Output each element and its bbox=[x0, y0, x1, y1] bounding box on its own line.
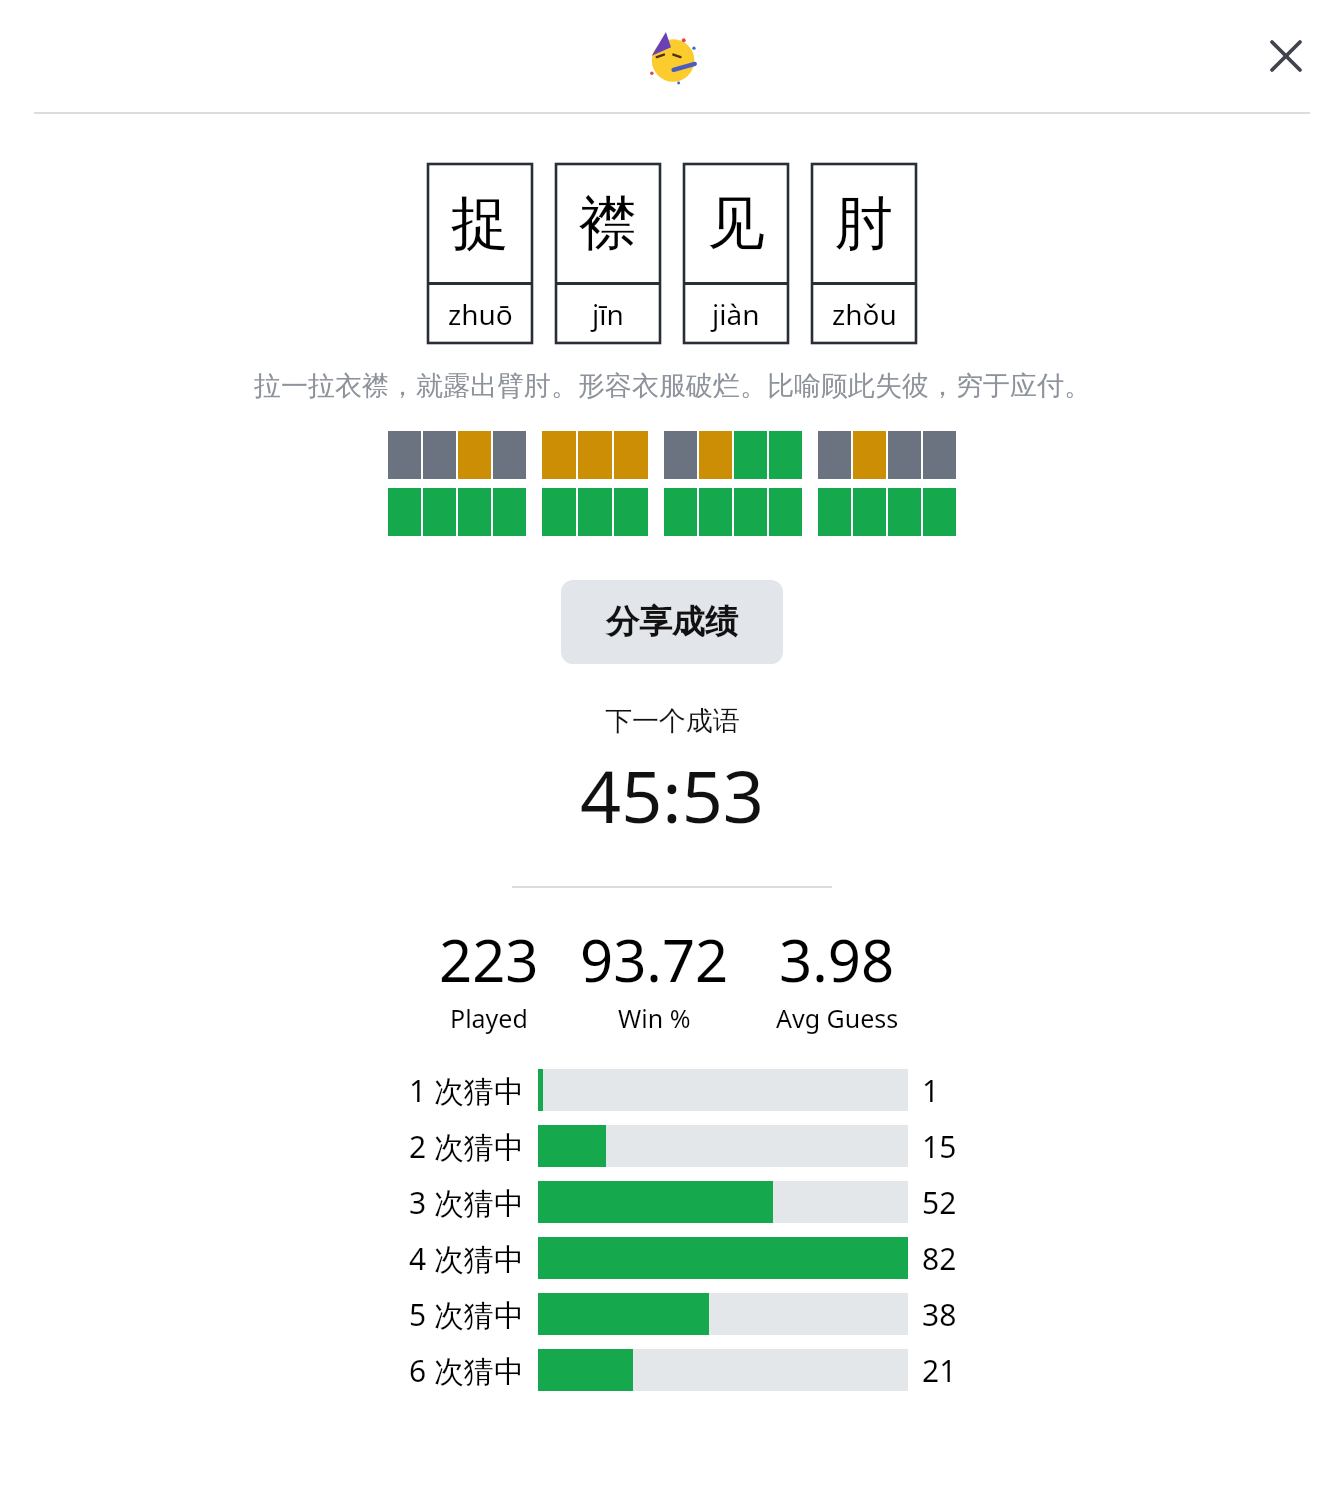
staticText: jiàn bbox=[712, 295, 760, 333]
staticText: 分享成绩 bbox=[606, 601, 738, 643]
button[interactable]: 襟 bbox=[556, 164, 660, 343]
button[interactable]: Close bbox=[1254, 24, 1318, 88]
staticText: 45:53 bbox=[580, 746, 765, 844]
staticText: Win % bbox=[618, 1001, 691, 1035]
staticText: jīn bbox=[592, 295, 624, 333]
staticText: 肘 bbox=[835, 187, 893, 260]
staticText: 襟 bbox=[579, 187, 637, 260]
staticText: 1 次猜中 bbox=[409, 1070, 524, 1111]
staticText: 3 次猜中 bbox=[409, 1182, 524, 1223]
staticText: 223 bbox=[439, 920, 539, 999]
staticText: zhuō bbox=[448, 295, 513, 333]
staticText: 52 bbox=[922, 1182, 957, 1223]
staticText: 见 bbox=[707, 187, 765, 260]
button[interactable]: 见 bbox=[684, 164, 788, 343]
staticText: 下一个成语 bbox=[605, 704, 740, 738]
staticText: 4 次猜中 bbox=[409, 1238, 524, 1279]
staticText: 93.72 bbox=[580, 920, 729, 999]
button[interactable]: 捉 bbox=[428, 164, 532, 343]
staticText: 21 bbox=[922, 1350, 957, 1391]
staticText: zhǒu bbox=[832, 295, 897, 333]
staticText: 3.98 bbox=[779, 920, 895, 999]
staticText: 捉 bbox=[451, 187, 509, 260]
staticText: Avg Guess bbox=[776, 1001, 899, 1035]
staticText: 38 bbox=[922, 1294, 957, 1335]
staticText: 82 bbox=[922, 1238, 957, 1279]
staticText: 6 次猜中 bbox=[409, 1350, 524, 1391]
staticText: Played bbox=[450, 1001, 528, 1035]
staticText: 15 bbox=[922, 1126, 957, 1167]
staticText: 5 次猜中 bbox=[409, 1294, 524, 1335]
staticText: 2 次猜中 bbox=[409, 1126, 524, 1167]
button[interactable]: 肘 bbox=[812, 164, 916, 343]
staticText: 1 bbox=[922, 1070, 940, 1111]
button[interactable]: 分享成绩 bbox=[561, 580, 783, 664]
staticText: 拉一拉衣襟，就露出臂肘。形容衣服破烂。比喻顾此失彼，穷于应付。 bbox=[254, 369, 1091, 403]
